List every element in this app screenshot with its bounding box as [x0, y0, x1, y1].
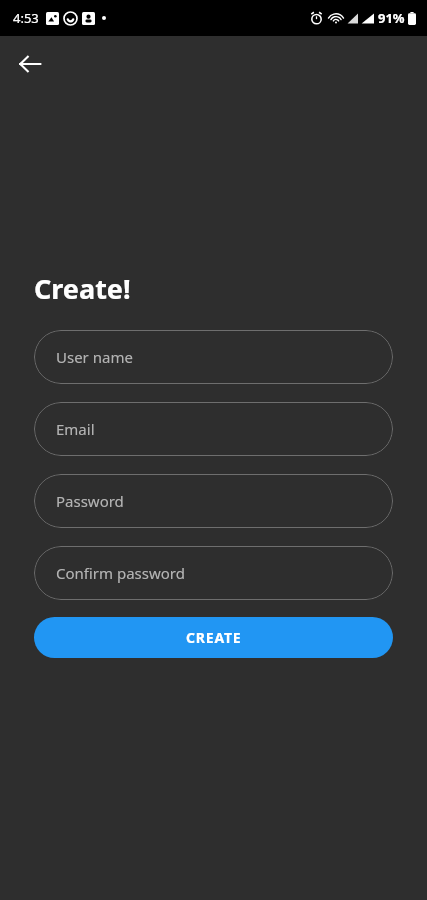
staticText: User name — [56, 347, 133, 367]
staticText: 91% — [378, 9, 405, 27]
staticText: Password — [56, 491, 124, 511]
staticText: 4:53 — [13, 9, 39, 27]
button[interactable]: Back — [10, 44, 50, 84]
button[interactable]: CREATE — [34, 617, 393, 658]
button[interactable]: Email — [34, 402, 393, 456]
button[interactable]: Confirm password — [34, 546, 393, 600]
staticText: Create! — [34, 270, 131, 307]
staticText: Confirm password — [56, 563, 185, 583]
button[interactable]: Password — [34, 474, 393, 528]
staticText: Email — [56, 419, 95, 439]
staticText: CREATE — [186, 628, 242, 647]
button[interactable]: User name — [34, 330, 393, 384]
